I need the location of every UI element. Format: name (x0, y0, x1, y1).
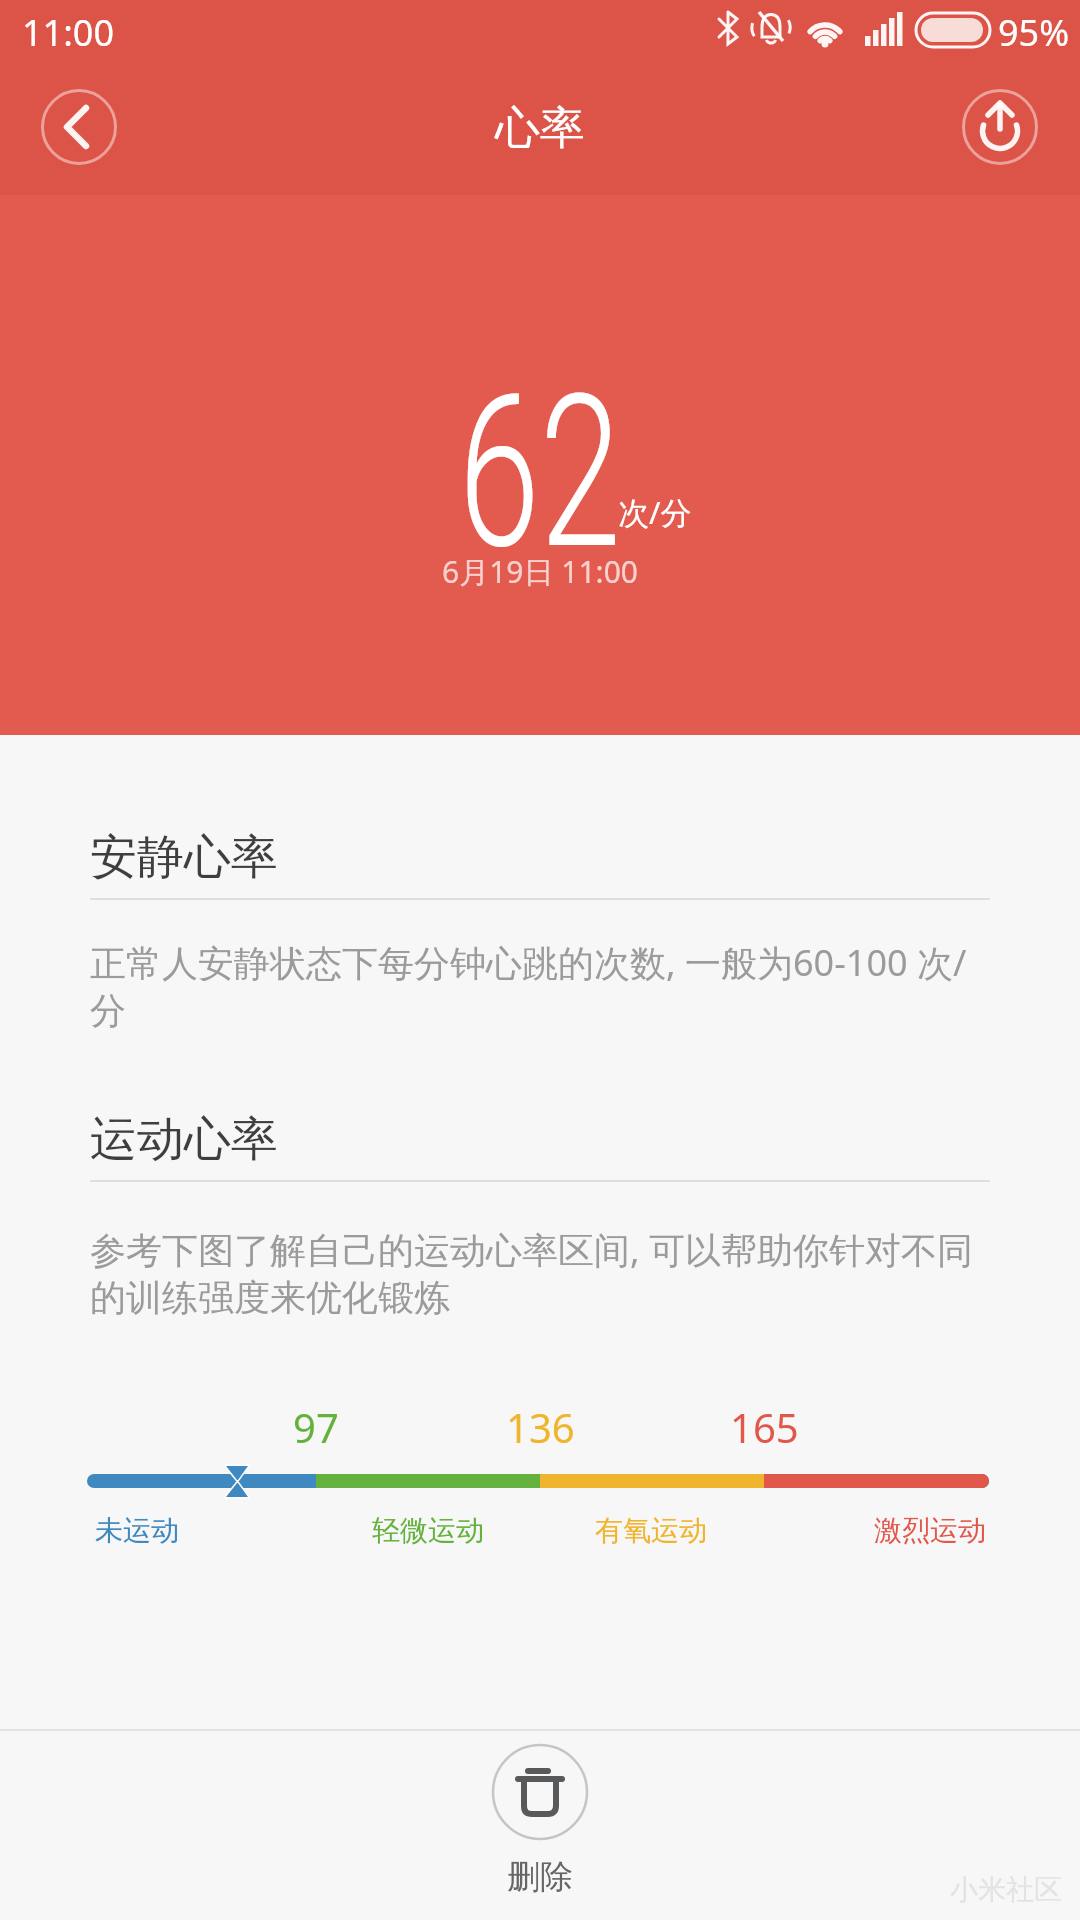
staticText: 97 (293, 1400, 339, 1454)
staticText: 165 (730, 1400, 799, 1454)
staticText: 激烈运动 (874, 1513, 986, 1548)
staticText: 参考下图了解自己的运动心率区间, 可以帮助你针对不同 的训练强度来优化锻炼 (90, 1225, 974, 1321)
staticText: 有氧运动 (595, 1513, 707, 1548)
staticText: 95% (998, 8, 1070, 57)
staticText: 6月19日 11:00 (442, 551, 638, 592)
staticText: 运动心率 (90, 1110, 278, 1169)
staticText: 次/分 (618, 491, 692, 533)
button[interactable] (962, 89, 1038, 165)
staticText: 删除 (507, 1856, 573, 1898)
staticText: 小米社区 (950, 1872, 1062, 1907)
staticText: 62 (459, 348, 621, 596)
staticText: 136 (506, 1400, 575, 1454)
staticText: 未运动 (95, 1513, 179, 1548)
button[interactable]: 删除 (480, 1738, 600, 1908)
staticText: 正常人安静状态下每分钟心跳的次数, 一般为60-100 次/ 分 (90, 938, 967, 1034)
staticText: 轻微运动 (372, 1513, 484, 1548)
staticText: 11:00 (22, 8, 115, 57)
button[interactable] (41, 89, 117, 165)
staticText: 安静心率 (90, 828, 278, 887)
staticText: 心率 (495, 100, 585, 157)
